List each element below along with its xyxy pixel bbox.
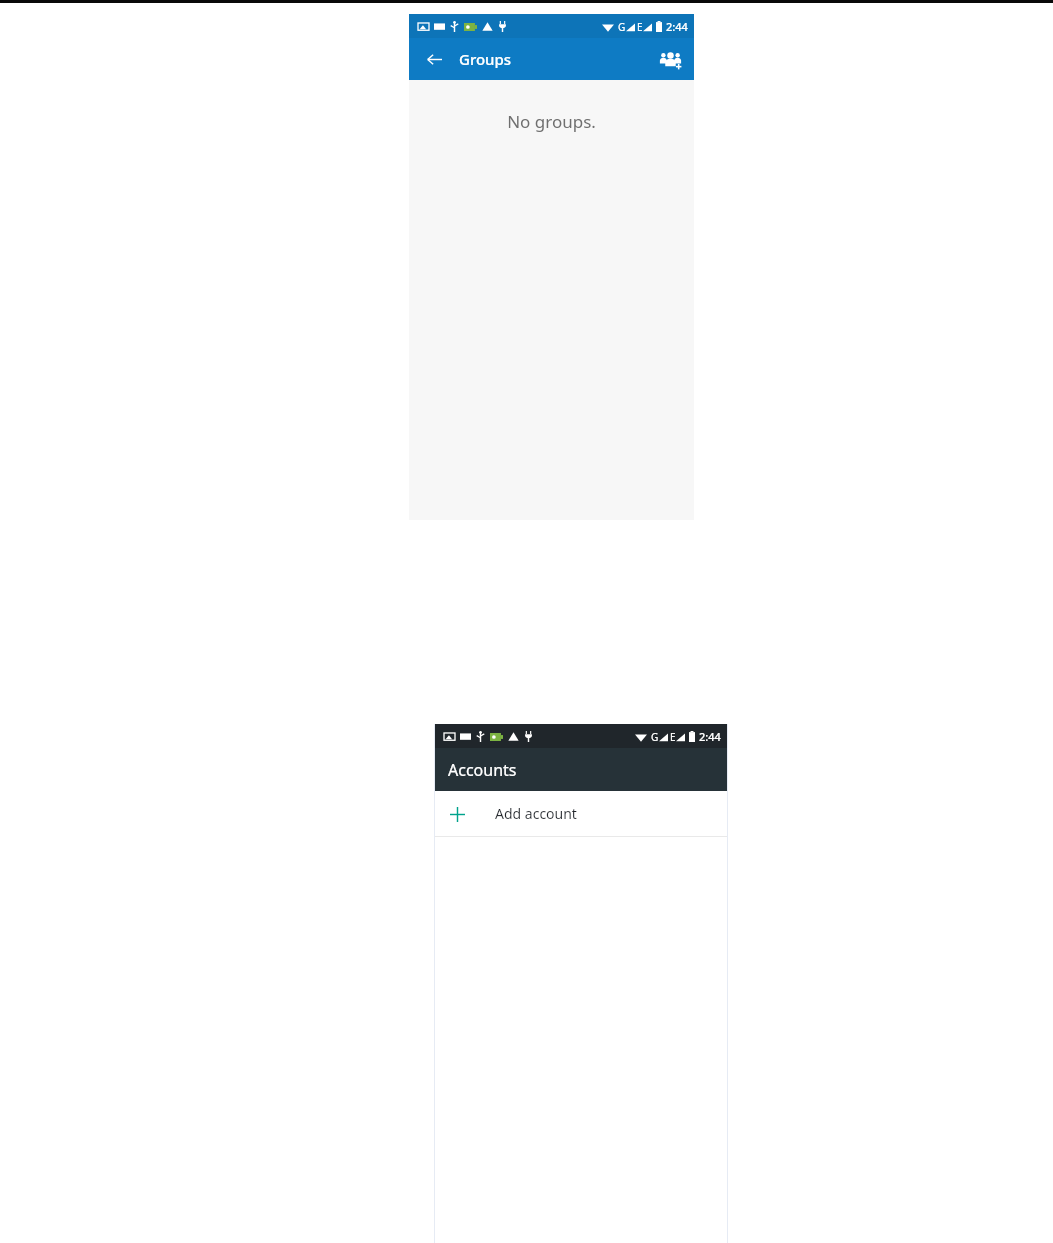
staticText: No groups. <box>507 110 596 133</box>
staticText: Add account <box>495 804 577 823</box>
staticText: 2:44 <box>699 729 721 744</box>
staticText: G <box>618 20 626 34</box>
staticText: E <box>637 20 643 34</box>
button[interactable]: Back <box>419 44 449 74</box>
button[interactable]: Add account <box>435 791 727 836</box>
staticText: 2:44 <box>666 19 688 34</box>
staticText: Groups <box>459 49 512 69</box>
button[interactable]: Create group <box>655 44 685 74</box>
staticText: G <box>651 730 659 744</box>
staticText: Accounts <box>448 759 517 781</box>
staticText: E <box>670 730 676 744</box>
